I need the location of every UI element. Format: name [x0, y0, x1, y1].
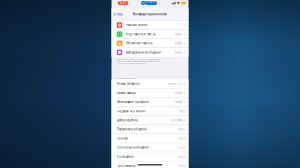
staticText: Чёрный список [126, 23, 147, 27]
button[interactable]: Пересылка сообщений [111, 125, 188, 134]
button[interactable]: Голосовые сообщения [111, 143, 188, 152]
staticText: Подарки «Со мной» [117, 109, 145, 113]
staticText: Назад [116, 12, 123, 16]
button[interactable]: Время захода [111, 88, 188, 97]
staticText: Все [179, 128, 183, 131]
button[interactable]: Код-пароль и Face ID [111, 30, 188, 39]
staticText: Время захода [117, 91, 135, 95]
staticText: Все [179, 155, 183, 158]
staticText: 1 [181, 23, 183, 27]
button[interactable]: Фотографии профиля [111, 98, 188, 106]
staticText: Все [179, 164, 183, 167]
button[interactable]: Звонки [111, 134, 188, 143]
staticText: Все [179, 137, 183, 140]
staticText: Номер телефона [117, 82, 139, 86]
staticText: Конфиденциальность [133, 12, 167, 16]
button[interactable]: Приглашения [111, 161, 188, 168]
staticText: КОНФИДЕНЦИАЛЬНОСТЬ [117, 78, 135, 79]
button[interactable]: Дата рождения [111, 116, 188, 125]
staticText: Все [179, 109, 183, 113]
button[interactable]: Автоудаление сообщений [111, 48, 188, 57]
button[interactable]: Подарки «Со мной» [111, 107, 188, 116]
staticText: Голосовые сообщения [117, 146, 149, 149]
staticText: Никто [175, 91, 183, 95]
staticText: Код-пароль и Face ID [126, 32, 156, 36]
staticText: 9:41 [119, 1, 126, 5]
staticText: Выкл. [175, 41, 183, 45]
staticText: Звонки [117, 137, 128, 140]
staticText: Дата рождения [117, 118, 138, 122]
staticText: Telegram [144, 0, 156, 7]
staticText: Вы можете ограничить круг людей, которые… [117, 59, 160, 61]
button[interactable]: Назад [111, 8, 123, 20]
staticText: Сообщения [117, 155, 134, 158]
staticText: Приглашения [117, 164, 136, 167]
staticText: Выкл. [175, 32, 183, 36]
staticText: Автоудаление сообщений [126, 51, 161, 54]
button[interactable]: Номер телефона [111, 79, 188, 88]
staticText: Контакты [171, 118, 183, 122]
button[interactable]: Сообщения [111, 152, 188, 161]
staticText: Все [179, 146, 183, 149]
staticText: ограничить, кто может звонить вам. [117, 62, 145, 64]
staticText: Фотографии профиля [117, 100, 149, 104]
staticText: Облачный пароль [126, 41, 152, 45]
staticText: Выкл. [175, 51, 183, 54]
button[interactable]: Чёрный список [111, 21, 188, 29]
button[interactable]: Облачный пароль [111, 39, 188, 48]
staticText: Никто (+1) [168, 82, 183, 86]
staticText: Никто [175, 100, 183, 104]
staticText: персональные данные, а также скрыть врем… [117, 61, 159, 62]
staticText: Пересылка сообщений [117, 128, 147, 131]
